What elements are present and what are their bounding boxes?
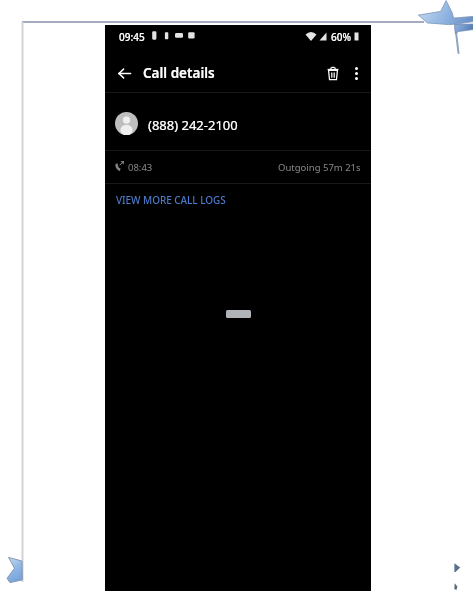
staticText: 09:45 xyxy=(119,30,145,44)
staticText: 08:43 xyxy=(128,161,153,174)
staticText: Outgoing 57m 21s xyxy=(278,161,361,174)
staticText: 60% xyxy=(331,30,351,44)
button[interactable]: 08:43 xyxy=(105,151,371,183)
button[interactable]: (888) 242-2100 xyxy=(105,93,371,150)
staticText: Call details xyxy=(143,64,215,82)
button[interactable]: VIEW MORE CALL LOGS xyxy=(105,184,371,216)
button[interactable]: Delete xyxy=(320,60,346,86)
staticText: VIEW MORE CALL LOGS xyxy=(116,193,226,207)
staticText: (888) 242-2100 xyxy=(148,116,238,134)
button[interactable]: Back xyxy=(111,60,137,86)
button[interactable]: More options xyxy=(347,63,367,83)
